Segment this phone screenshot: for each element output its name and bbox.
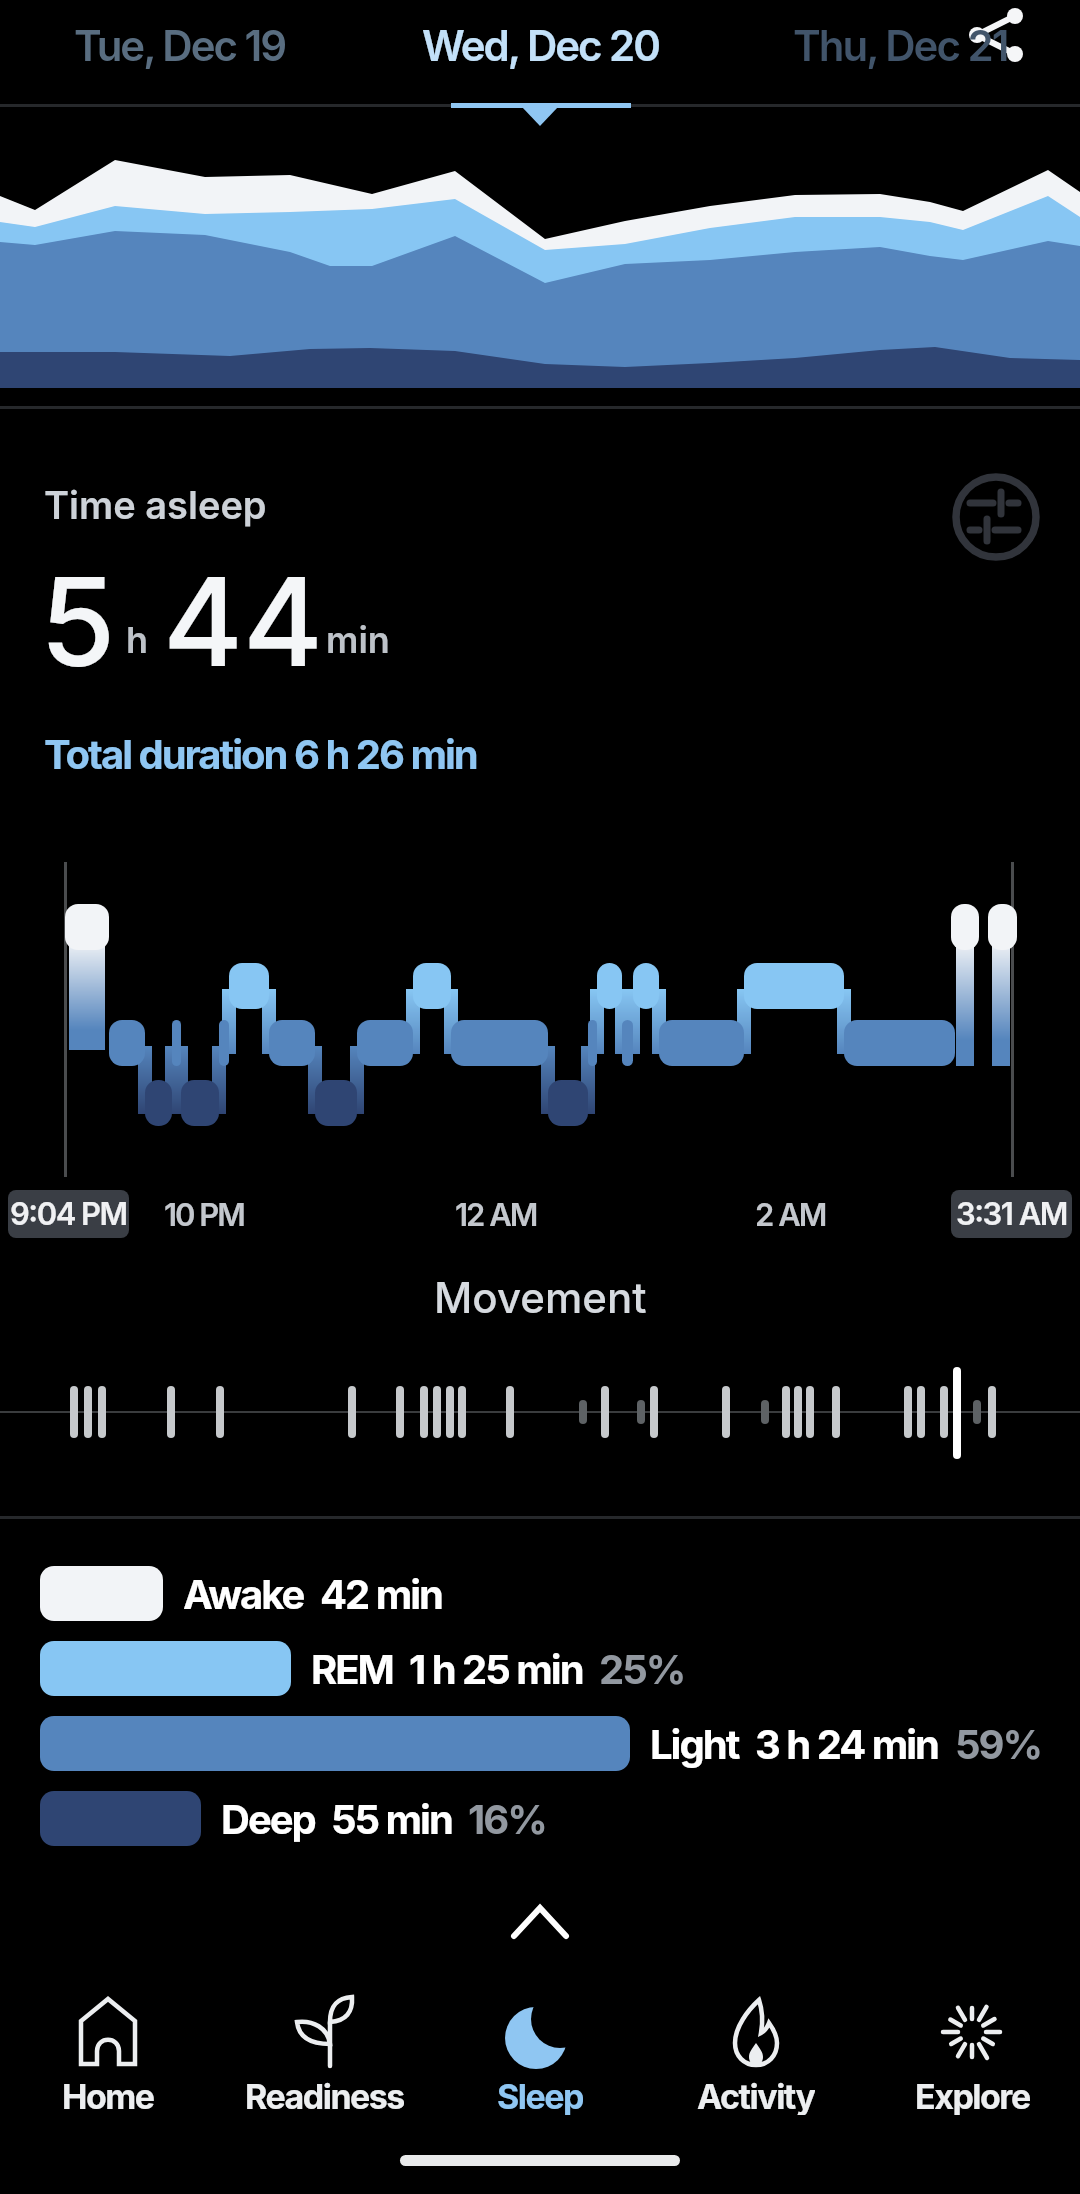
- button[interactable]: [500, 1895, 580, 1955]
- button[interactable]: Home: [0, 1980, 216, 2115]
- staticText: Movement: [434, 1272, 647, 1323]
- button[interactable]: Thu, Dec 21: [720, 0, 1080, 90]
- button[interactable]: Wed, Dec 20: [360, 0, 720, 90]
- staticText: 5: [40, 548, 116, 696]
- staticText: min: [326, 618, 390, 662]
- staticText: Thu, Dec 21: [793, 20, 1008, 71]
- staticText: Activity: [697, 2076, 815, 2115]
- staticText: 55 min: [331, 1795, 452, 1843]
- button[interactable]: Activity: [648, 1980, 864, 2115]
- button[interactable]: Readiness: [216, 1980, 432, 2115]
- staticText: Awake: [183, 1570, 304, 1618]
- staticText: 44: [163, 548, 324, 696]
- staticText: 25%: [599, 1645, 685, 1693]
- staticText: Sleep: [497, 2076, 583, 2115]
- button[interactable]: [952, 472, 1040, 560]
- staticText: 2 AM: [755, 1196, 826, 1234]
- staticText: Light: [650, 1720, 739, 1768]
- staticText: 59%: [955, 1720, 1042, 1768]
- staticText: 3:31 AM: [956, 1195, 1067, 1233]
- button[interactable]: Tue, Dec 19: [0, 0, 360, 90]
- button[interactable]: Sleep: [432, 1980, 648, 2115]
- staticText: Wed, Dec 20: [422, 20, 659, 71]
- staticText: Deep: [221, 1795, 315, 1843]
- staticText: 12 AM: [455, 1196, 537, 1234]
- staticText: 9:04 PM: [10, 1195, 127, 1233]
- staticText: 42 min: [320, 1570, 442, 1618]
- staticText: Explore: [915, 2076, 1030, 2115]
- staticText: Time asleep: [44, 482, 267, 528]
- staticText: 10 PM: [164, 1196, 244, 1234]
- button[interactable]: Explore: [864, 1980, 1080, 2115]
- staticText: Home: [62, 2076, 154, 2115]
- staticText: Tue, Dec 19: [74, 20, 286, 71]
- staticText: REM: [311, 1645, 393, 1693]
- staticText: 16%: [468, 1795, 546, 1843]
- button[interactable]: [950, 0, 1040, 80]
- staticText: Total duration 6 h 26 min: [44, 730, 477, 778]
- staticText: h: [126, 618, 149, 662]
- staticText: 3 h 24 min: [755, 1720, 939, 1768]
- staticText: Readiness: [245, 2076, 404, 2115]
- staticText: 1 h 25 min: [409, 1645, 583, 1693]
